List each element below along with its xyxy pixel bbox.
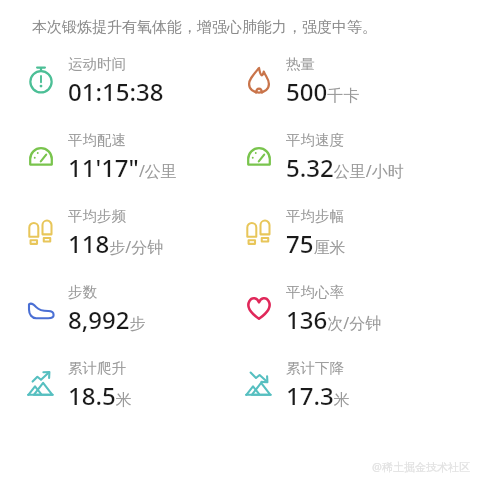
button[interactable]: 平均速度 <box>238 131 404 184</box>
other: 步数 <box>26 293 56 323</box>
other: 平均步幅 <box>244 217 274 247</box>
staticText: 136次/分钟 <box>286 303 382 336</box>
staticText: 平均配速 <box>68 131 126 149</box>
staticText: 500千卡 <box>286 75 360 108</box>
staticText: 平均步频 <box>68 207 126 225</box>
other: 运动时间 <box>26 65 56 95</box>
staticText: 01:15:38 <box>68 75 164 108</box>
staticText: 118步/分钟 <box>68 227 164 260</box>
button[interactable]: 热量 <box>238 55 360 108</box>
button[interactable]: 累计爬升 <box>20 359 132 412</box>
button[interactable]: 运动时间 <box>20 55 164 108</box>
other: 热量 <box>244 65 274 95</box>
other: 累计爬升 <box>26 369 56 399</box>
staticText: 本次锻炼提升有氧体能，增强心肺能力，强度中等。 <box>32 18 377 37</box>
staticText: 运动时间 <box>68 55 126 73</box>
other: 平均速度 <box>244 141 274 171</box>
staticText: 75厘米 <box>286 227 346 260</box>
button[interactable]: 平均配速 <box>20 131 177 184</box>
staticText: 平均速度 <box>286 131 344 149</box>
staticText: 热量 <box>286 55 315 73</box>
staticText: 步数 <box>68 283 97 301</box>
staticText: 8,992步 <box>68 303 146 336</box>
staticText: 累计下降 <box>286 359 344 377</box>
other: 平均心率 <box>244 293 274 323</box>
button[interactable]: 平均心率 <box>238 283 382 336</box>
staticText: 平均心率 <box>286 283 344 301</box>
button[interactable]: 步数 <box>20 283 146 336</box>
button[interactable]: 平均步幅 <box>238 207 346 260</box>
other: 平均步频 <box>26 217 56 247</box>
other: 平均配速 <box>26 141 56 171</box>
staticText: 平均步幅 <box>286 207 344 225</box>
other: 累计下降 <box>244 369 274 399</box>
staticText: 17.3米 <box>286 379 350 412</box>
staticText: 11'17"/公里 <box>68 151 177 184</box>
staticText: 累计爬升 <box>68 359 126 377</box>
button[interactable]: 累计下降 <box>238 359 350 412</box>
staticText: 18.5米 <box>68 379 132 412</box>
staticText: 5.32公里/小时 <box>286 151 404 184</box>
button[interactable]: 平均步频 <box>20 207 164 260</box>
staticText: @稀土掘金技术社区 <box>372 459 470 474</box>
